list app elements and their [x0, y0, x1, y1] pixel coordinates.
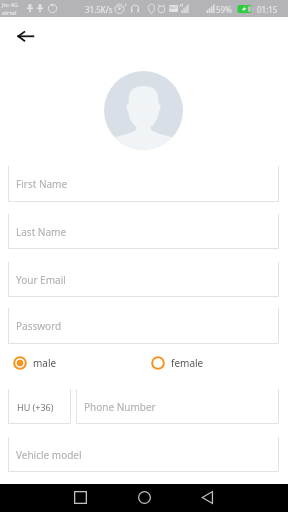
button[interactable]: HU (+36) [8, 389, 71, 424]
staticText: 59% [216, 4, 232, 15]
staticText: female [171, 356, 204, 370]
button[interactable]: Back [201, 491, 214, 504]
staticText: Last Name [16, 225, 67, 239]
staticText: HU (+36) [17, 401, 54, 413]
staticText: airtel [2, 9, 17, 17]
button[interactable]: Password [8, 308, 279, 344]
staticText: Vehicle model [16, 448, 82, 462]
button[interactable]: Your Email [8, 262, 279, 297]
staticText: VoLTE [169, 5, 178, 12]
button[interactable]: Home [138, 491, 151, 504]
button[interactable]: Recent apps [74, 491, 87, 504]
button[interactable]: male [10, 352, 60, 373]
staticText: Jio 4G [2, 1, 19, 9]
staticText: 31.5K/s [85, 4, 113, 15]
button[interactable]: First Name [8, 166, 279, 202]
staticText: Password [16, 319, 62, 333]
staticText: Phone Number [84, 400, 156, 414]
staticText: Your Email [16, 273, 66, 287]
button[interactable]: Back [8, 22, 38, 52]
button[interactable]: Phone Number [76, 389, 279, 424]
staticText: male [33, 356, 57, 370]
button[interactable]: Vehicle model [8, 437, 279, 472]
staticText: First Name [16, 177, 68, 191]
button[interactable]: Last Name [8, 214, 279, 249]
staticText: 01:15 [257, 4, 278, 15]
button[interactable]: female [148, 352, 207, 373]
